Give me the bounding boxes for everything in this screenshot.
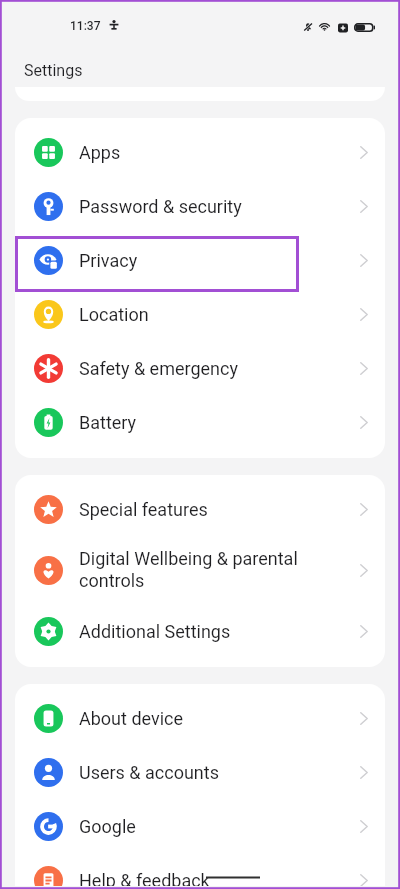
button[interactable]: Password & security bbox=[15, 179, 385, 233]
button[interactable]: About device bbox=[15, 691, 385, 745]
button[interactable]: Google bbox=[15, 799, 385, 853]
staticText: Help & feedback bbox=[79, 870, 352, 886]
staticText: About device bbox=[79, 708, 352, 729]
button[interactable]: Location bbox=[15, 287, 385, 341]
staticText: Battery bbox=[79, 412, 352, 433]
staticText: Location bbox=[79, 304, 352, 325]
button[interactable]: Help & feedback bbox=[15, 853, 385, 886]
button[interactable]: Apps bbox=[15, 125, 385, 179]
staticText: Settings bbox=[24, 61, 83, 80]
button[interactable]: Privacy bbox=[15, 233, 385, 287]
staticText: Safety & emergency bbox=[79, 358, 352, 379]
button[interactable]: Additional Settings bbox=[15, 604, 385, 658]
staticText: Password & security bbox=[79, 196, 352, 217]
staticText: Digital Wellbeing & parental controls bbox=[79, 548, 352, 592]
button[interactable]: Special features bbox=[15, 482, 385, 536]
staticText: Special features bbox=[79, 499, 352, 520]
staticText: Privacy bbox=[79, 250, 352, 271]
button[interactable]: Users & accounts bbox=[15, 745, 385, 799]
staticText: Google bbox=[79, 816, 352, 837]
staticText: Users & accounts bbox=[79, 762, 352, 783]
button[interactable]: Digital Wellbeing & parental controls bbox=[15, 536, 385, 604]
button[interactable]: Battery bbox=[15, 395, 385, 449]
staticText: Apps bbox=[79, 142, 352, 163]
staticText: Additional Settings bbox=[79, 621, 352, 642]
staticText: 11:37 bbox=[70, 19, 101, 33]
button[interactable]: Safety & emergency bbox=[15, 341, 385, 395]
